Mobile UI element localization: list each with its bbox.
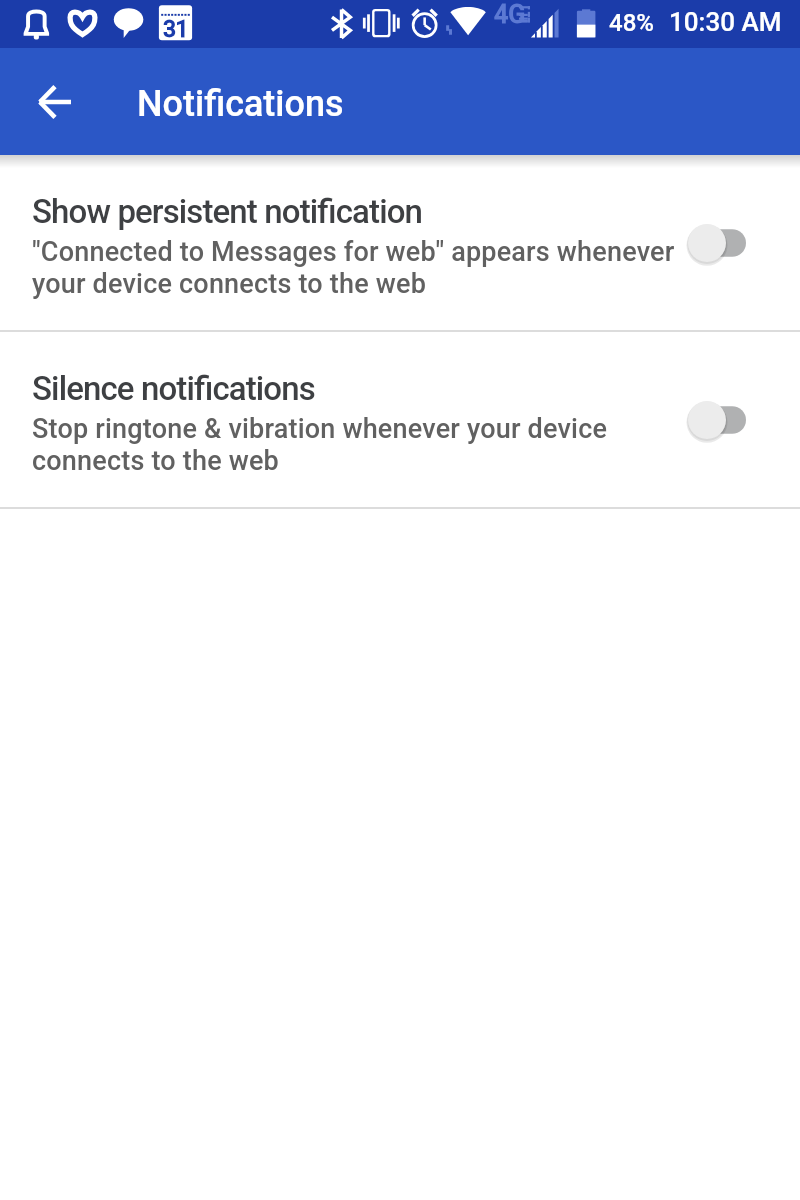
button[interactable]: Silence notifications (0, 332, 800, 507)
staticText: "Connected to Messages for web" appears … (32, 236, 675, 300)
button[interactable]: Toggle (688, 219, 762, 267)
button[interactable]: Back (26, 68, 94, 136)
staticText: 31 (163, 16, 188, 43)
staticText: 4G (494, 0, 526, 29)
staticText: Notifications (137, 83, 344, 125)
button[interactable]: Toggle (688, 396, 762, 444)
staticText: 10:30 AM (669, 7, 782, 37)
staticText: Show persistent notification (32, 192, 423, 231)
staticText: 48% (609, 9, 654, 37)
staticText: Silence notifications (32, 369, 315, 408)
button[interactable]: Show persistent notification (0, 155, 800, 330)
staticText: Stop ringtone & vibration whenever your … (32, 413, 608, 477)
